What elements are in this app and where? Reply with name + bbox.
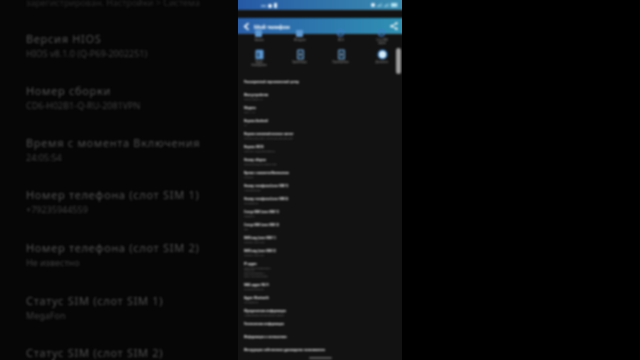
button[interactable]: Адрес Bluetooth <box>238 294 402 307</box>
staticText: +79235944559 <box>26 203 88 215</box>
staticText: Информация о соглашении <box>244 335 287 339</box>
staticText: Звонки <box>254 38 264 42</box>
button[interactable]: Время с момента Включения <box>238 169 402 182</box>
button[interactable]: Имя устройства <box>238 91 402 104</box>
staticText: Статус SIM (слот SIM 1) <box>244 210 279 214</box>
staticText: Не известно <box>26 256 80 268</box>
button[interactable]: Номер телефона (слот SIM 2) <box>238 195 402 208</box>
staticText: Номер телефона (слот SIM 2) <box>26 240 200 255</box>
staticText: Номер телефона (слот SIM 2) <box>244 197 289 201</box>
staticText: Номер телефона (слот SIM 1) <box>26 187 200 202</box>
button[interactable]: Номер телефона (слот SIM 1) <box>238 182 402 195</box>
button[interactable]: Версия Android <box>238 117 402 130</box>
staticText: Время с момента Включения <box>26 135 201 150</box>
staticText: Приложения <box>332 60 349 64</box>
staticText: IMEI-код (слот SIM 2) <box>244 249 276 253</box>
staticText: Время с момента Включения <box>244 171 289 175</box>
staticText: Номер сборки <box>244 158 266 162</box>
staticText: IMEI-код (слот SIM 1) <box>244 236 276 240</box>
staticText: fe80::a00:27ff:fe4e:66a1 10.0.2.15 fe80:… <box>244 266 271 278</box>
button[interactable]: Номер сборки <box>238 156 402 169</box>
button[interactable]: IMEI-код (слот SIM 1) <box>238 234 402 247</box>
staticText: Версия HIOS <box>244 145 264 149</box>
staticText: 24:05:54 <box>244 175 254 178</box>
button[interactable]: Back <box>238 18 254 34</box>
staticText: MegaFon <box>244 214 255 217</box>
button[interactable]: Share <box>386 18 402 34</box>
staticText: Информация об авторских правах <box>244 313 284 316</box>
staticText: Статус SIM (слот SIM 2) <box>26 345 164 360</box>
staticText: Расширенный персональный центр <box>244 80 299 84</box>
staticText: Модель <box>244 106 256 110</box>
staticText: 02:00:00:00:00:00 <box>244 287 264 290</box>
button[interactable]: Расширенный персональный центр <box>238 78 402 91</box>
button[interactable]: Сеть SIM карты <box>361 30 402 44</box>
staticText: CD6-H02B1-Q-RU-2081VPN <box>26 99 141 111</box>
staticText: 24:05:54 <box>26 151 62 163</box>
staticText: MegaFon <box>26 309 66 321</box>
button[interactable]: Интернет <box>279 30 320 42</box>
staticText: Хранилище <box>292 60 307 64</box>
button[interactable]: Экран блокировки <box>238 49 279 66</box>
staticText: Техническая информация <box>244 322 284 326</box>
staticText: CE7j 1 111 <box>244 110 256 113</box>
button[interactable]: Статус SIM (слот SIM 2) <box>238 221 402 234</box>
staticText: IP-адрес <box>244 262 257 266</box>
staticText: Номер сборки <box>26 83 112 98</box>
button[interactable]: Звонки <box>238 30 279 42</box>
button[interactable]: Инструкция: собственное руководство поль… <box>238 346 402 359</box>
button[interactable]: Модель <box>238 104 402 117</box>
staticText: Адрес Bluetooth <box>244 296 269 300</box>
staticText: Не известно <box>244 201 259 204</box>
staticText: Номер телефона (слот SIM 1) <box>244 184 289 188</box>
staticText: Мой телефон <box>254 23 290 30</box>
staticText: 352045110011231 <box>244 253 265 256</box>
staticText: +79235944559 <box>244 188 261 191</box>
staticText: Интернет <box>294 38 306 42</box>
button[interactable]: Хранилище <box>279 49 320 64</box>
button[interactable]: Техническая информация <box>238 320 402 333</box>
button[interactable]: Wi-Fi <box>320 30 361 42</box>
button[interactable]: Дополнит. <box>361 49 402 64</box>
staticText: Статус SIM (слот SIM 2) <box>244 223 279 227</box>
button[interactable]: Статус SIM (слот SIM 1) <box>238 208 402 221</box>
button[interactable]: IMEI-код (слот SIM 2) <box>238 247 402 260</box>
staticText: зарегистрирован. Настройки > Система <box>26 0 200 8</box>
staticText: Версия HIOS <box>26 31 102 46</box>
staticText: Юридическая информация <box>244 309 286 313</box>
button[interactable]: Версия HIOS <box>238 143 402 156</box>
staticText: MAC-адрес Wi-Fi <box>244 283 269 287</box>
staticText: Экран блокировки <box>251 60 267 66</box>
staticText: Tecno Camon 16 <box>244 97 263 100</box>
staticText: Версия основной полосы частот <box>244 132 294 136</box>
staticText: HIOS v6.1.0 (Q-P69-200221) <box>244 149 275 152</box>
staticText: Сеть SIM карты <box>376 38 388 44</box>
staticText: Имя устройства <box>244 93 269 97</box>
staticText: Статус SIM (слот SIM 1) <box>26 293 164 308</box>
button[interactable]: Информация о соглашении <box>238 333 402 346</box>
staticText: Инструкция: собственное руководство поль… <box>244 348 325 352</box>
staticText: Wi-Fi <box>338 38 344 42</box>
staticText: Версия Android <box>244 119 268 123</box>
button[interactable]: MAC-адрес Wi-Fi <box>238 281 402 294</box>
button[interactable]: IP-адрес <box>238 260 402 281</box>
staticText: CE7j-H6129-Q-GL-200221V89 <box>244 162 277 165</box>
staticText: Дополнит. <box>375 60 389 64</box>
staticText: HIOS v8.1.0 (Q-P69-2002251) <box>26 47 148 59</box>
button[interactable]: Приложения <box>320 49 361 64</box>
button[interactable]: Юридическая информация <box>238 307 402 320</box>
staticText: Не известно <box>244 300 259 303</box>
staticText: 352045110011223 <box>244 240 265 243</box>
button[interactable]: Версия основной полосы частот <box>238 130 402 143</box>
